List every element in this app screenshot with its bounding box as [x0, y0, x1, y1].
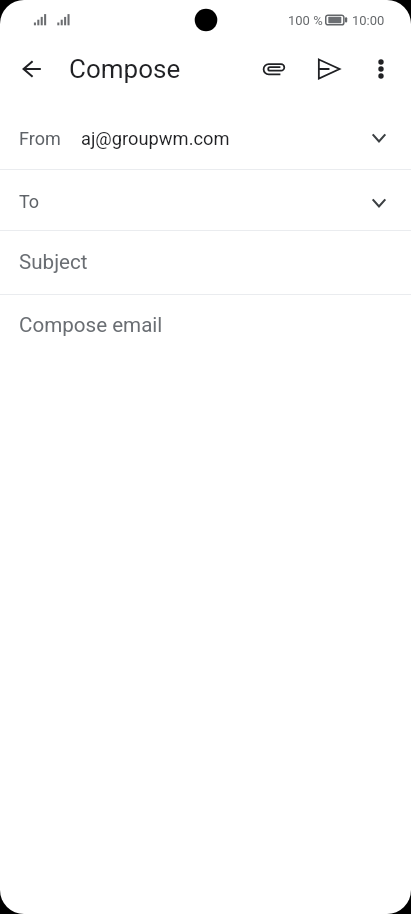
- staticText: Compose email: [19, 313, 163, 337]
- button[interactable]: Send: [307, 47, 351, 91]
- button[interactable]: Compose email: [0, 295, 411, 357]
- staticText: From: [19, 128, 61, 149]
- button[interactable]: Back: [10, 47, 54, 91]
- button[interactable]: To: [0, 170, 411, 231]
- button[interactable]: Show Cc and Bcc: [359, 183, 399, 223]
- staticText: Compose: [69, 54, 181, 84]
- button[interactable]: Attach file: [252, 47, 296, 91]
- button[interactable]: More options: [359, 47, 403, 91]
- staticText: 10:00: [352, 13, 385, 28]
- staticText: aj@groupwm.com: [81, 128, 230, 149]
- button[interactable]: Subject: [0, 231, 411, 295]
- button[interactable]: From: [0, 107, 411, 170]
- staticText: 100 %: [288, 13, 323, 28]
- staticText: Subject: [19, 250, 88, 274]
- button[interactable]: Show sender options: [359, 118, 399, 158]
- staticText: To: [19, 191, 40, 212]
